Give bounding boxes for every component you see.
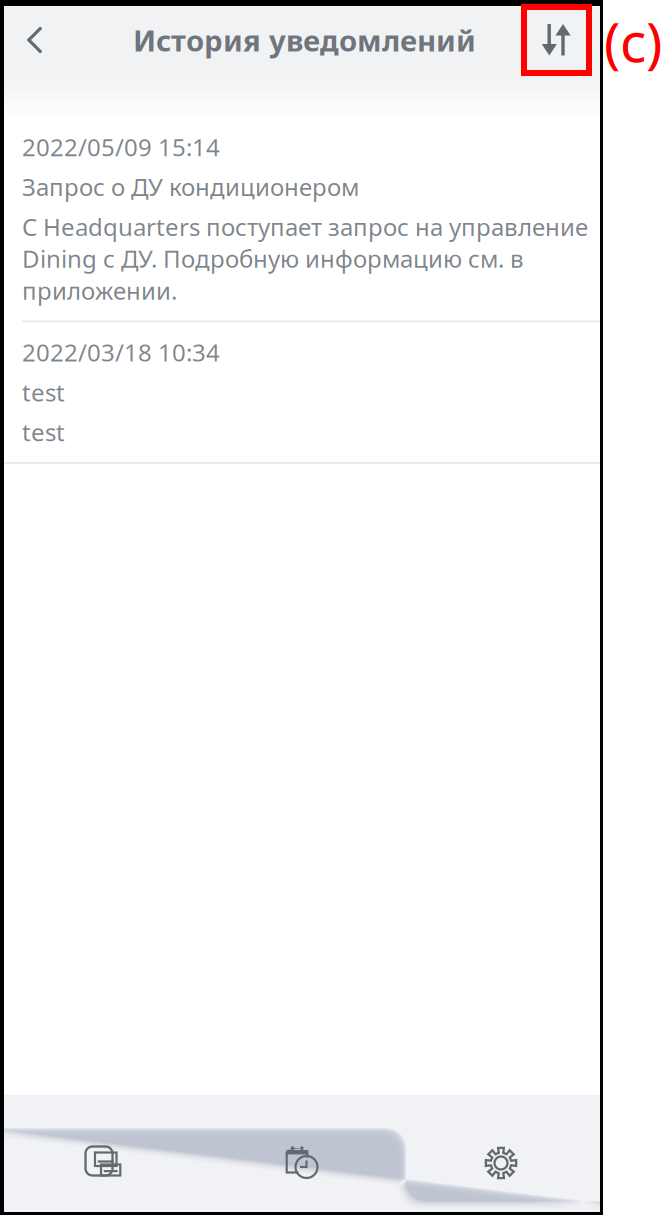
button[interactable]: Sort order [518,1,600,79]
staticText: test [22,416,65,448]
button[interactable]: Back [4,7,66,73]
staticText: (c) [604,5,662,77]
staticText: 2022/05/09 15:14 [22,131,220,163]
button[interactable]: Schedule [203,1127,402,1199]
button[interactable]: 2022/03/18 10:34 [4,322,600,462]
staticText: Запрос о ДУ кондиционером [22,171,359,203]
staticText: 2022/03/18 10:34 [22,336,220,368]
button[interactable]: Devices [4,1127,203,1199]
staticText: test [22,376,65,408]
staticText: С Headquarters поступает запрос на управ… [22,211,588,306]
button[interactable]: Settings [402,1127,600,1199]
staticText: История уведомлений [133,20,476,59]
button[interactable]: 2022/05/09 15:14 [4,117,600,320]
